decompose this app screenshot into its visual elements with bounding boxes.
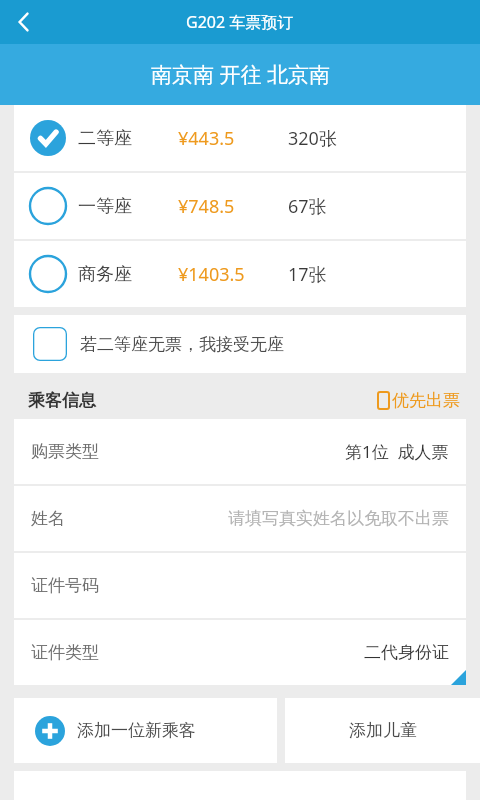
staticText: 若二等座无票，我接受无座 xyxy=(80,334,284,355)
button[interactable]: 添加儿童 xyxy=(285,698,480,763)
staticText: 乘客信息 xyxy=(28,390,96,411)
staticText: 一等座 xyxy=(78,195,178,218)
staticText: ¥1403.5 xyxy=(178,262,288,287)
staticText: ¥748.5 xyxy=(178,194,288,219)
button[interactable]: 证件类型 xyxy=(14,620,466,685)
staticText: 320张 xyxy=(288,126,337,151)
staticText: 南京南 开往 北京南 xyxy=(151,60,330,89)
button[interactable]: 若二等座无票，我接受无座 xyxy=(14,315,466,373)
staticText: 购票类型 xyxy=(31,441,99,462)
staticText: G202 车票预订 xyxy=(186,11,294,33)
staticText: 优先出票 xyxy=(392,390,460,411)
button[interactable]: 证件号码 xyxy=(14,553,466,618)
button[interactable]: 商务座 xyxy=(14,241,466,307)
staticText: 请填写真实姓名以免取不出票 xyxy=(228,508,449,529)
staticText: 姓名 xyxy=(31,508,65,529)
staticText: 证件号码 xyxy=(31,575,99,596)
button[interactable]: 二等座 xyxy=(14,105,466,171)
button[interactable]: 一等座 xyxy=(14,173,466,239)
staticText: 商务座 xyxy=(78,263,178,286)
button[interactable]: Back xyxy=(0,0,48,44)
button[interactable]: 姓名 xyxy=(14,486,466,551)
button[interactable]: 购票类型 xyxy=(14,419,466,484)
staticText: 添加儿童 xyxy=(349,720,417,741)
staticText: 67张 xyxy=(288,194,327,219)
button[interactable]: 优先出票 xyxy=(378,390,460,411)
staticText: 二代身份证 xyxy=(364,642,449,663)
staticText: 第1位 成人票 xyxy=(345,440,449,463)
staticText: 17张 xyxy=(288,262,327,287)
button[interactable]: 添加一位新乘客 xyxy=(14,698,277,763)
staticText: ¥443.5 xyxy=(178,126,288,151)
staticText: 证件类型 xyxy=(31,642,99,663)
staticText: 添加一位新乘客 xyxy=(77,720,196,741)
staticText: 二等座 xyxy=(78,127,178,150)
